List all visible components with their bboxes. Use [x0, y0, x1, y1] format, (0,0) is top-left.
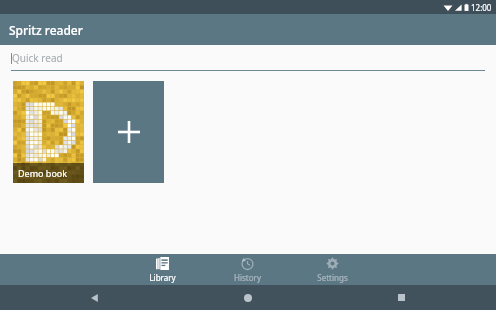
- button[interactable]: Home: [228, 285, 268, 310]
- staticText: History: [234, 272, 261, 283]
- button[interactable]: Library: [120, 254, 205, 285]
- staticText: Quick read: [12, 51, 63, 65]
- staticText: Spritz reader: [9, 22, 83, 38]
- staticText: 12:00: [471, 2, 492, 13]
- button[interactable]: Demo book: [13, 81, 84, 183]
- button[interactable]: Settings: [290, 254, 375, 285]
- button[interactable]: History: [205, 254, 290, 285]
- button[interactable]: Back: [75, 285, 115, 310]
- button[interactable]: Add book: [93, 81, 164, 183]
- button[interactable]: Quick read: [11, 51, 485, 71]
- staticText: Library: [149, 272, 176, 283]
- staticText: Settings: [317, 272, 348, 283]
- button[interactable]: Recents: [381, 285, 421, 310]
- staticText: Demo book: [18, 167, 68, 179]
